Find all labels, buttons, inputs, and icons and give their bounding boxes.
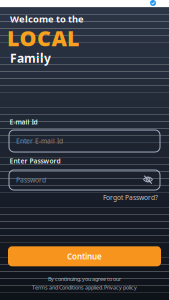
staticText: LOCAL: [7, 24, 79, 52]
button[interactable]: Terms and Conditions: [32, 284, 84, 291]
staticText: Enter E-mail Id: [16, 137, 63, 145]
button[interactable]: Continue: [8, 246, 161, 266]
button[interactable]: Show password: [143, 175, 153, 184]
staticText: Welcome to the: [10, 13, 84, 25]
staticText: Terms and Conditions: [32, 284, 84, 291]
staticText: Privacy policy: [104, 284, 137, 291]
staticText: Enter Password: [9, 157, 60, 165]
staticText: Continue: [67, 251, 102, 262]
staticText: By continuing, you agree to our: [48, 275, 121, 283]
staticText: E-mail Id: [9, 118, 37, 126]
staticText: Password: [16, 176, 46, 184]
staticText: Family: [10, 50, 51, 66]
button[interactable]: Privacy policy: [104, 284, 137, 291]
button[interactable]: Forgot Password?: [103, 193, 158, 202]
staticText: applied.: [84, 284, 104, 291]
staticText: Forgot Password?: [103, 193, 158, 202]
